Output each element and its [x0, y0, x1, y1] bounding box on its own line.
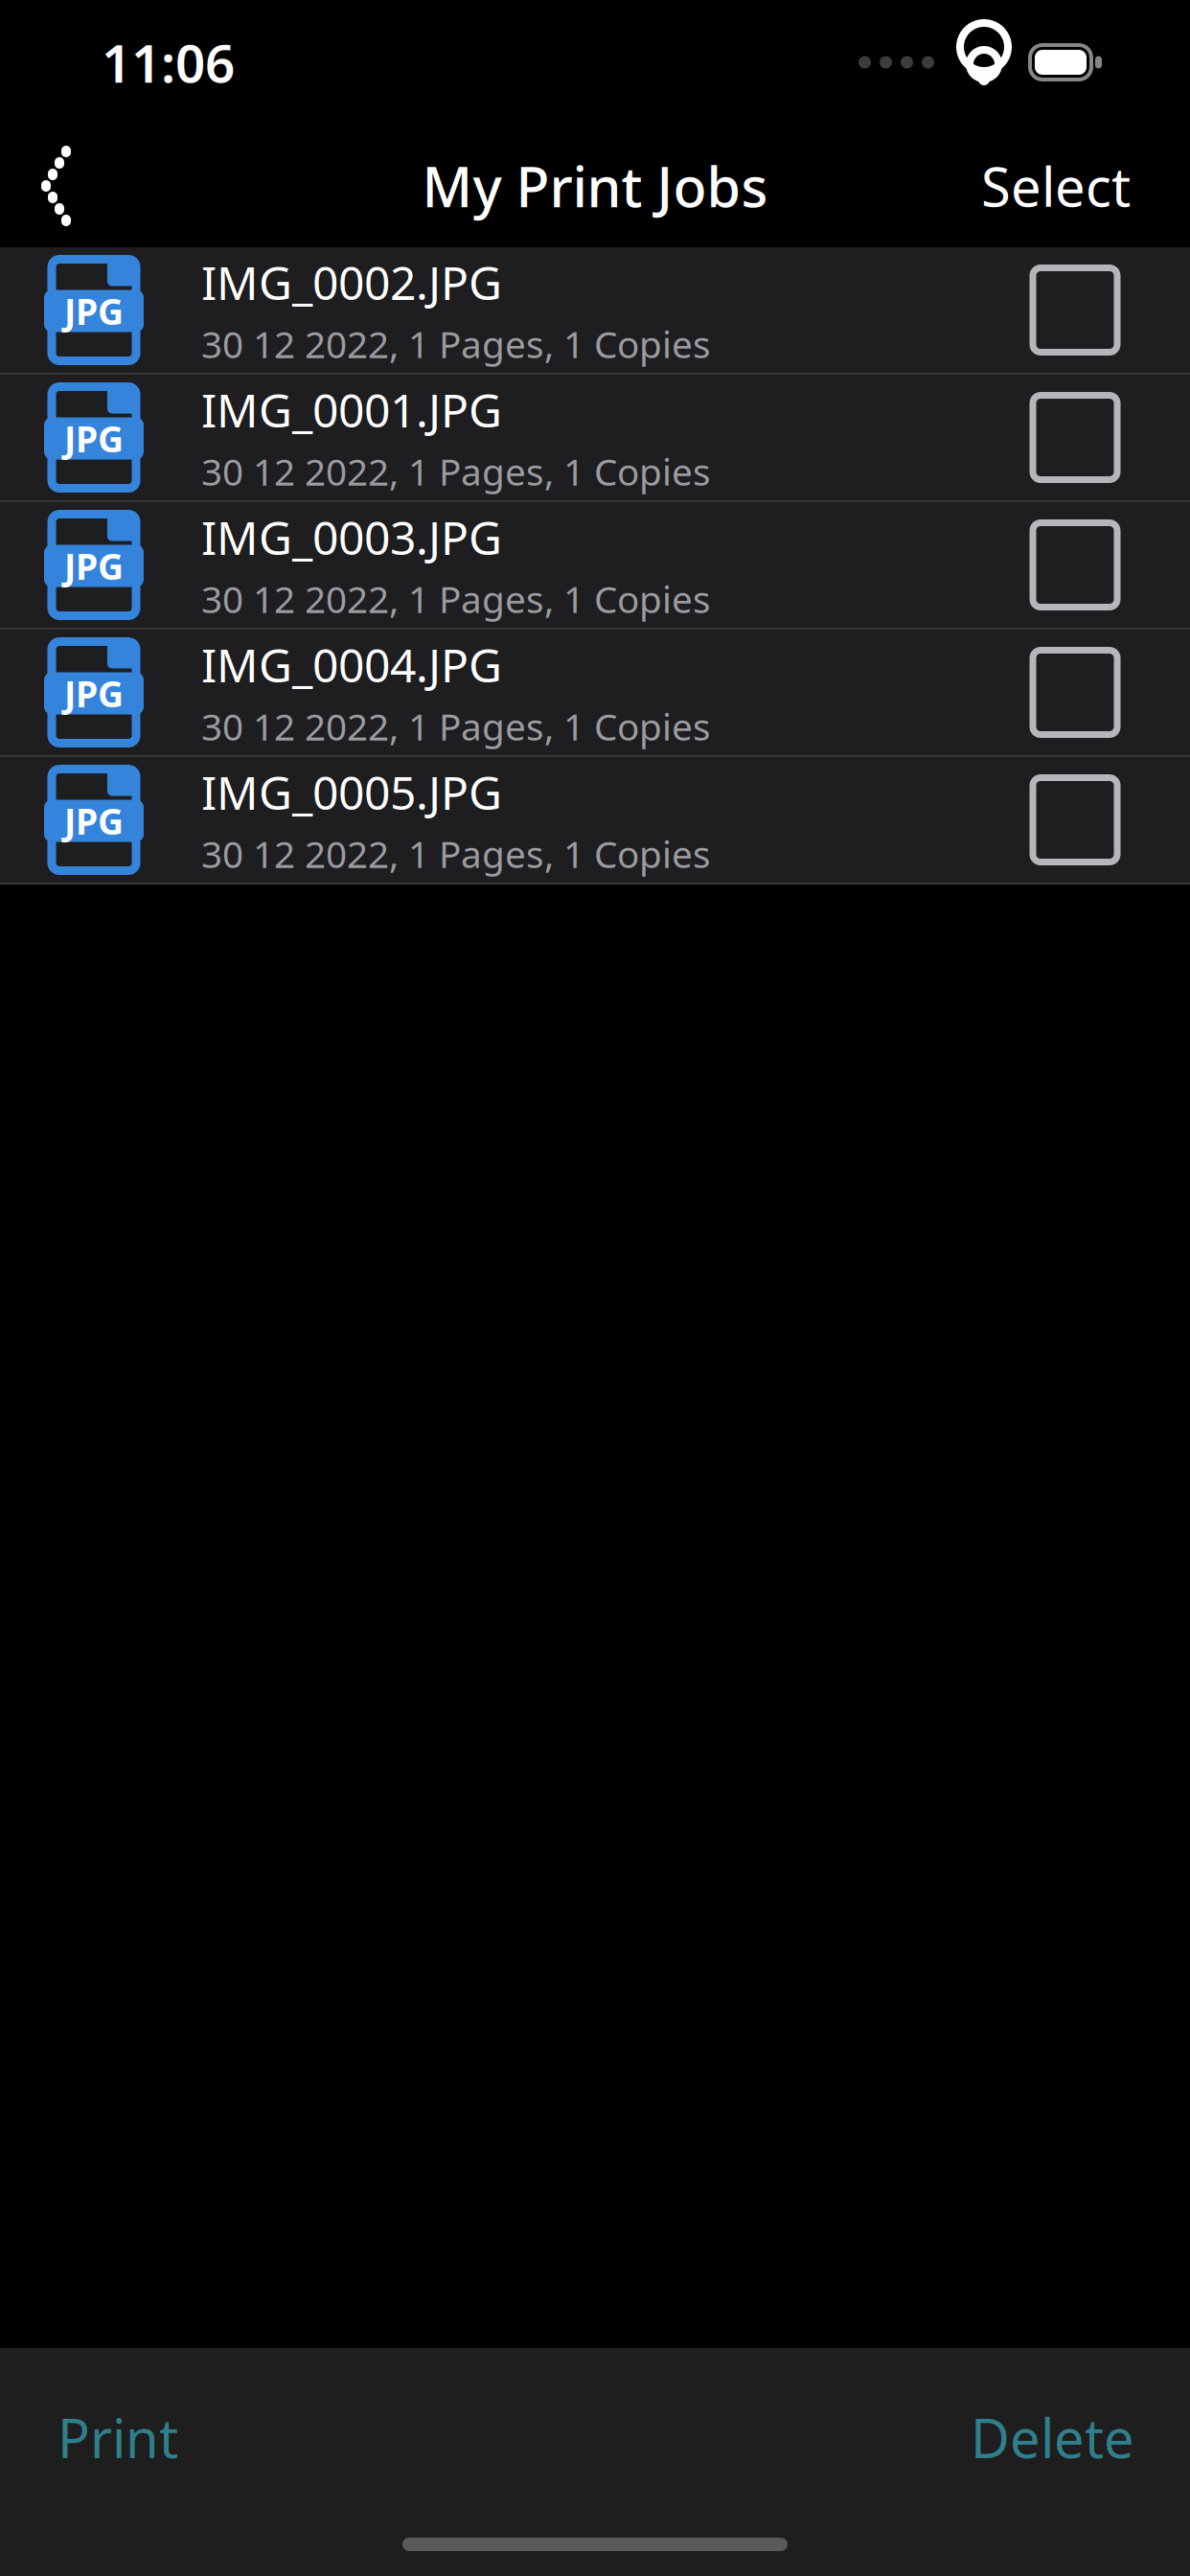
- staticText: JPG: [64, 415, 124, 462]
- staticText: IMG_0004.JPG: [201, 634, 502, 695]
- staticText: 30 12 2022, 1 Pages, 1 Copies: [201, 447, 711, 496]
- staticText: 30 12 2022, 1 Pages, 1 Copies: [201, 702, 711, 751]
- button[interactable]: Back: [0, 125, 103, 247]
- button[interactable]: JPG: [0, 757, 1190, 885]
- button[interactable]: JPG: [0, 502, 1190, 630]
- staticText: Print: [57, 2402, 178, 2473]
- button[interactable]: Select: [952, 125, 1159, 246]
- button[interactable]: Print: [31, 2377, 205, 2498]
- staticText: 30 12 2022, 1 Pages, 1 Copies: [201, 574, 711, 623]
- staticText: Delete: [971, 2402, 1134, 2473]
- staticText: 11:06: [102, 28, 235, 97]
- button[interactable]: Delete: [944, 2377, 1161, 2498]
- button[interactable]: JPG: [0, 247, 1190, 375]
- staticText: 30 12 2022, 1 Pages, 1 Copies: [201, 829, 711, 878]
- staticText: IMG_0002.JPG: [201, 252, 502, 313]
- staticText: Select: [981, 150, 1131, 222]
- staticText: My Print Jobs: [422, 149, 768, 222]
- staticText: JPG: [64, 287, 124, 335]
- staticText: JPG: [64, 542, 124, 590]
- staticText: IMG_0003.JPG: [201, 506, 502, 568]
- staticText: IMG_0005.JPG: [201, 761, 502, 822]
- staticText: JPG: [64, 670, 124, 717]
- staticText: JPG: [64, 797, 124, 845]
- button[interactable]: JPG: [0, 630, 1190, 757]
- staticText: 30 12 2022, 1 Pages, 1 Copies: [201, 319, 711, 368]
- button[interactable]: JPG: [0, 375, 1190, 502]
- staticText: IMG_0001.JPG: [201, 379, 502, 440]
